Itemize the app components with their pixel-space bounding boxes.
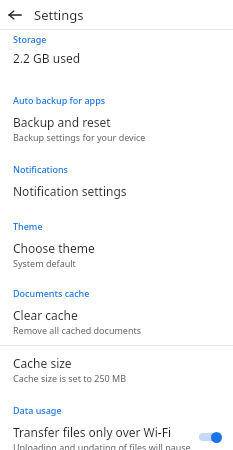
- staticText: Auto backup for apps: [13, 94, 106, 106]
- button[interactable]: Cache size: [0, 346, 233, 384]
- staticText: Transfer files only over Wi-Fi: [13, 424, 172, 440]
- button[interactable]: Transfer files only over Wi-Fi: [0, 416, 233, 450]
- staticText: Notification settings: [13, 183, 127, 199]
- staticText: Cache size: [13, 355, 72, 371]
- button[interactable]: Back: [0, 0, 30, 29]
- staticText: Notifications: [13, 163, 68, 175]
- staticText: Backup settings for your device: [13, 131, 146, 143]
- button[interactable]: Notification settings: [0, 175, 233, 199]
- button[interactable]: Choose theme: [0, 232, 233, 269]
- staticText: Remove all cached documents: [13, 324, 142, 336]
- button[interactable]: Clear cache: [0, 299, 233, 336]
- staticText: Data usage: [13, 404, 62, 416]
- staticText: 2.2 GB used: [13, 50, 81, 66]
- staticText: Uploading and updating of files will pau…: [13, 441, 191, 450]
- staticText: Theme: [13, 220, 43, 232]
- staticText: Cache size is set to 250 MB: [13, 372, 127, 384]
- button[interactable]: Transfer files only over Wi-Fi toggle: [195, 427, 225, 447]
- staticText: Storage: [13, 33, 47, 45]
- button[interactable]: Backup and reset: [0, 106, 233, 143]
- staticText: System default: [13, 257, 76, 269]
- staticText: Backup and reset: [13, 114, 111, 130]
- staticText: Choose theme: [13, 240, 95, 256]
- staticText: Clear cache: [13, 307, 78, 323]
- staticText: Settings: [34, 6, 84, 24]
- staticText: Documents cache: [13, 287, 90, 299]
- button[interactable]: 2.2 GB used: [0, 45, 233, 66]
